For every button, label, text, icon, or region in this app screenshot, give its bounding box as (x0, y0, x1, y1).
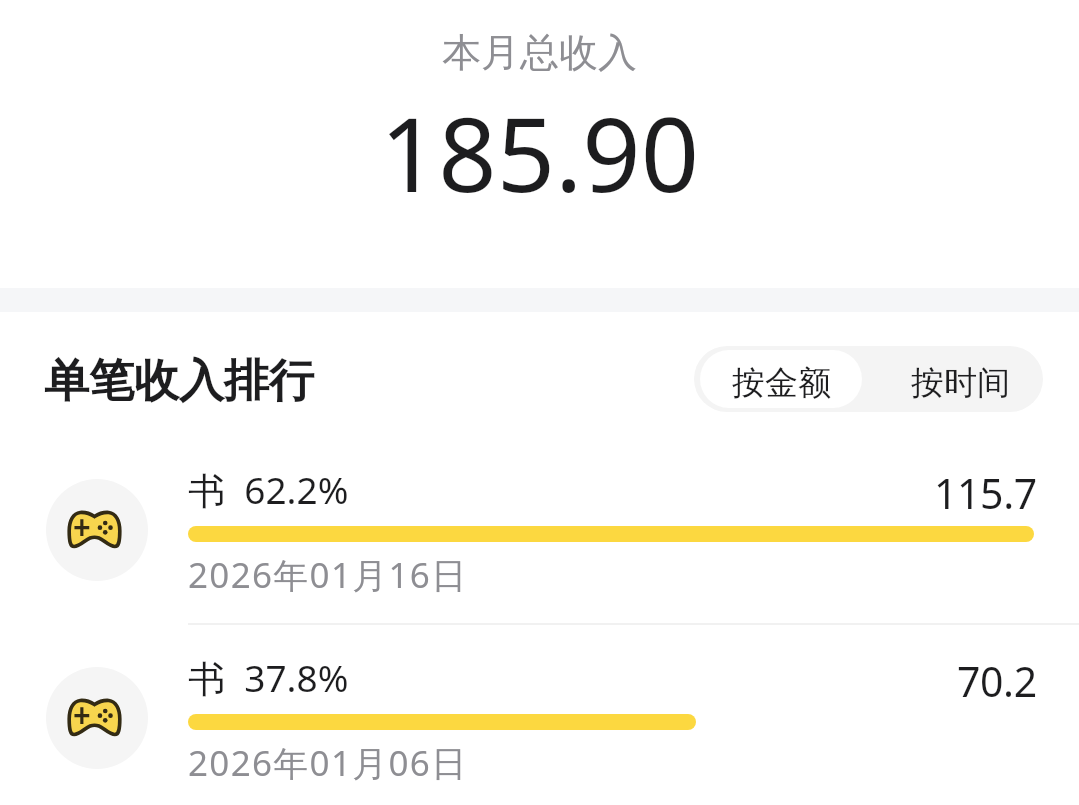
staticText: 115.7 (934, 465, 1037, 521)
staticText: 单笔收入排行 (44, 353, 314, 410)
staticText: 2026年01月06日 (188, 739, 468, 787)
button[interactable]: 按时间 (862, 346, 1043, 412)
staticText: 185.90 (380, 83, 700, 222)
staticText: 按时间 (911, 362, 1010, 404)
staticText: 70.2 (957, 653, 1037, 709)
button[interactable]: Game category (0, 626, 1079, 805)
staticText: 书 62.2% (188, 464, 349, 515)
staticText: 本月总收入 (442, 28, 637, 77)
other: Game category (67, 699, 122, 736)
button[interactable]: 按金额 (700, 350, 862, 408)
staticText: 2026年01月16日 (188, 551, 468, 599)
other: Game category (67, 511, 122, 548)
staticText: 按金额 (732, 362, 831, 404)
button[interactable]: Game category (0, 438, 1079, 626)
staticText: 书 37.8% (188, 652, 349, 703)
